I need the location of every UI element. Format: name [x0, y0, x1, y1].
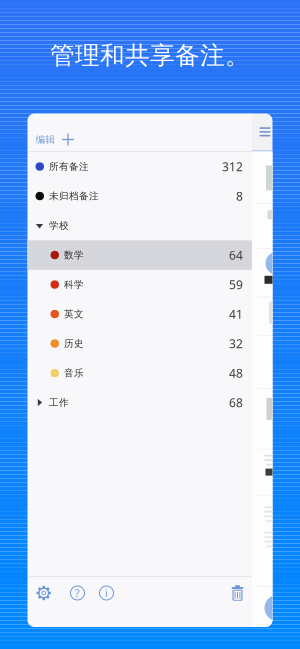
staticText: 英文 [64, 308, 84, 320]
button[interactable]: 编辑 [35, 133, 55, 146]
button[interactable]: 科学 [27, 270, 252, 299]
staticText: 59 [229, 276, 243, 293]
button[interactable]: 数学 [27, 240, 252, 270]
button[interactable]: 未归档备注 [27, 181, 252, 211]
staticText: 科学 [64, 278, 84, 291]
button[interactable]: Delete [231, 585, 243, 601]
staticText: 数学 [64, 249, 84, 261]
button[interactable]: Settings [36, 586, 51, 600]
staticText: i [105, 586, 108, 600]
button[interactable]: New Folder [61, 133, 74, 146]
button[interactable]: 英文 [27, 299, 252, 329]
staticText: 历史 [64, 337, 84, 350]
staticText: 41 [229, 306, 243, 322]
staticText: 32 [229, 335, 243, 352]
staticText: 管理和共享备注。 [50, 40, 250, 71]
staticText: 48 [229, 365, 243, 381]
staticText: 学校 [49, 219, 69, 232]
staticText: 68 [229, 394, 243, 411]
staticText: 8 [236, 188, 243, 204]
staticText: 编辑 [35, 133, 55, 146]
staticText: 工作 [49, 396, 69, 409]
button[interactable]: 音乐 [27, 358, 252, 388]
button[interactable]: Help [70, 585, 85, 600]
staticText: ? [75, 586, 80, 600]
staticText: 未归档备注 [49, 190, 99, 202]
staticText: 音乐 [64, 367, 84, 379]
button[interactable]: 所有备注 [27, 152, 252, 181]
button[interactable]: Information [99, 585, 114, 600]
staticText: 所有备注 [49, 160, 89, 173]
staticText: 312 [222, 158, 243, 175]
button[interactable]: 学校 [27, 211, 252, 240]
button[interactable]: 工作 [27, 388, 252, 417]
staticText: 64 [229, 247, 243, 263]
button[interactable]: 历史 [27, 329, 252, 358]
